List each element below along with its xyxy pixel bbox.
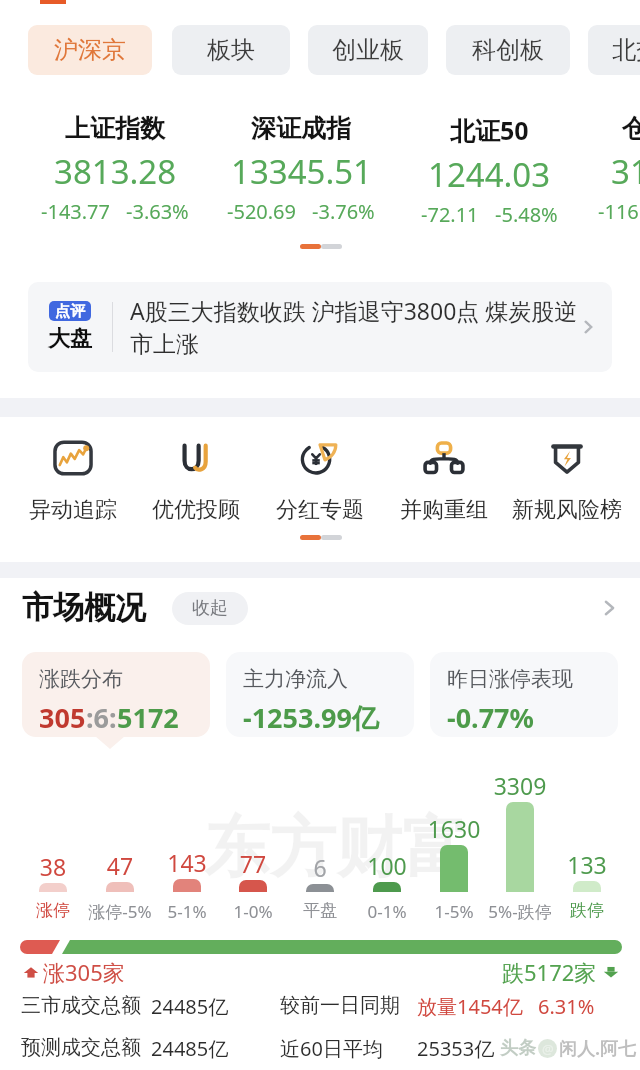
staticText: 0-1% [342,900,432,923]
staticText: 放量1454亿 [417,993,523,1020]
staticText: 5172 [117,699,179,736]
staticText: 近60日平均 [280,1035,383,1062]
staticText: 涨跌分布 [39,666,123,692]
staticText: 较前一日同期 [280,993,400,1018]
button[interactable]: 深证成指 [191,113,411,225]
button[interactable]: 科创板 [446,25,570,75]
staticText: 3813.28 [54,149,177,194]
staticText: A股三大指数收跌 沪指退守3800点 煤炭股逆 [130,295,578,326]
staticText: -143.77 [41,198,110,225]
other: More [596,595,622,621]
button[interactable]: 分红专题 [258,434,382,524]
staticText: 科创板 [472,35,544,65]
staticText: 板块 [207,35,255,65]
button[interactable]: 昨日涨停表现 [430,652,618,737]
staticText: 东方财富 [204,806,468,889]
staticText: 13345.51 [231,149,372,194]
staticText: -1253.99亿 [243,699,379,736]
staticText: 收起 [192,597,228,620]
staticText: -5.48% [495,201,558,228]
staticText: 跌5172家 [502,957,597,987]
staticText: 深证成指 [251,113,351,144]
staticText: 并购重组 [400,496,488,524]
button[interactable]: 仓位指数 [562,113,640,225]
staticText: 上证指数 [65,113,165,144]
staticText: 市上涨 [130,330,199,359]
button[interactable]: 创业板 [308,25,428,75]
staticText: 涨305家 [43,957,125,987]
staticText: 跌停 [542,900,632,921]
button[interactable]: 主力净流入 [226,652,414,737]
staticText: 133 [542,849,632,880]
staticText: 3309 [475,770,565,801]
button[interactable]: 收起 [172,592,248,625]
button[interactable]: 优优投顾 [134,434,258,524]
staticText: 24485亿 [151,993,229,1020]
staticText: -116.22 [598,198,640,225]
staticText: -520.69 [227,198,296,225]
staticText: 6.31% [538,993,595,1020]
staticText: 24485亿 [151,1035,229,1062]
staticText: 305 [39,699,86,736]
staticText: 异动追踪 [29,496,117,524]
button[interactable]: 北交所 [588,25,640,75]
staticText: 25353亿 [417,1035,495,1062]
staticText: 1630 [409,813,499,844]
staticText: 沪深京 [54,35,126,65]
button[interactable]: 沪深京 [28,25,152,75]
staticText: 38 [8,851,98,882]
staticText: 三市成交总额 [21,993,141,1018]
staticText: 1244.03 [428,152,551,197]
staticText: 47 [75,850,165,881]
staticText: 77 [208,848,298,879]
staticText: -3.63% [126,198,189,225]
button[interactable]: 点评 [28,282,612,372]
staticText: 100 [342,850,432,881]
staticText: 平盘 [275,900,365,921]
staticText: -3.76% [312,198,375,225]
staticText: :6: [86,699,117,736]
staticText: 1-5% [409,900,499,923]
staticText: 优优投顾 [152,496,240,524]
button[interactable]: 新规风险榜 [505,434,629,524]
button[interactable]: 并购重组 [382,434,506,524]
staticText: 预测成交总额 [21,1035,141,1060]
staticText: 市场概况 [22,588,146,627]
staticText: 143 [142,847,232,878]
staticText: 头条 [500,1037,536,1060]
staticText: 1-0% [208,900,298,923]
staticText: @ [542,1040,554,1058]
staticText: 主力净流入 [243,666,348,692]
staticText: 创业板 [332,35,404,65]
staticText: 北证50 [450,113,529,147]
button[interactable]: 上证指数 [5,113,225,225]
button[interactable]: 板块 [172,25,290,75]
other: More [578,316,598,338]
staticText: 新规风险榜 [512,496,622,524]
button[interactable]: 异动追踪 [11,434,135,524]
staticText: 仓位指数 [622,113,640,144]
staticText: 北交所 [612,35,640,65]
staticText: 大盘 [48,325,92,353]
staticText: 5-1% [142,900,232,923]
staticText: 3152.66 [611,149,640,194]
staticText: 昨日涨停表现 [447,666,573,692]
button[interactable]: 涨跌分布 [22,652,210,737]
staticText: -72.11 [421,201,479,228]
staticText: 涨停-5% [75,900,165,923]
staticText: 闲人.阿七 [559,1036,637,1061]
staticText: 分红专题 [276,496,364,524]
staticText: 点评 [55,302,85,321]
staticText: -0.77% [447,699,534,736]
staticText: 5%-跌停 [475,900,565,923]
staticText: 涨停 [8,900,98,921]
staticText: 6 [275,852,365,883]
button[interactable]: 北证50 [379,113,599,228]
